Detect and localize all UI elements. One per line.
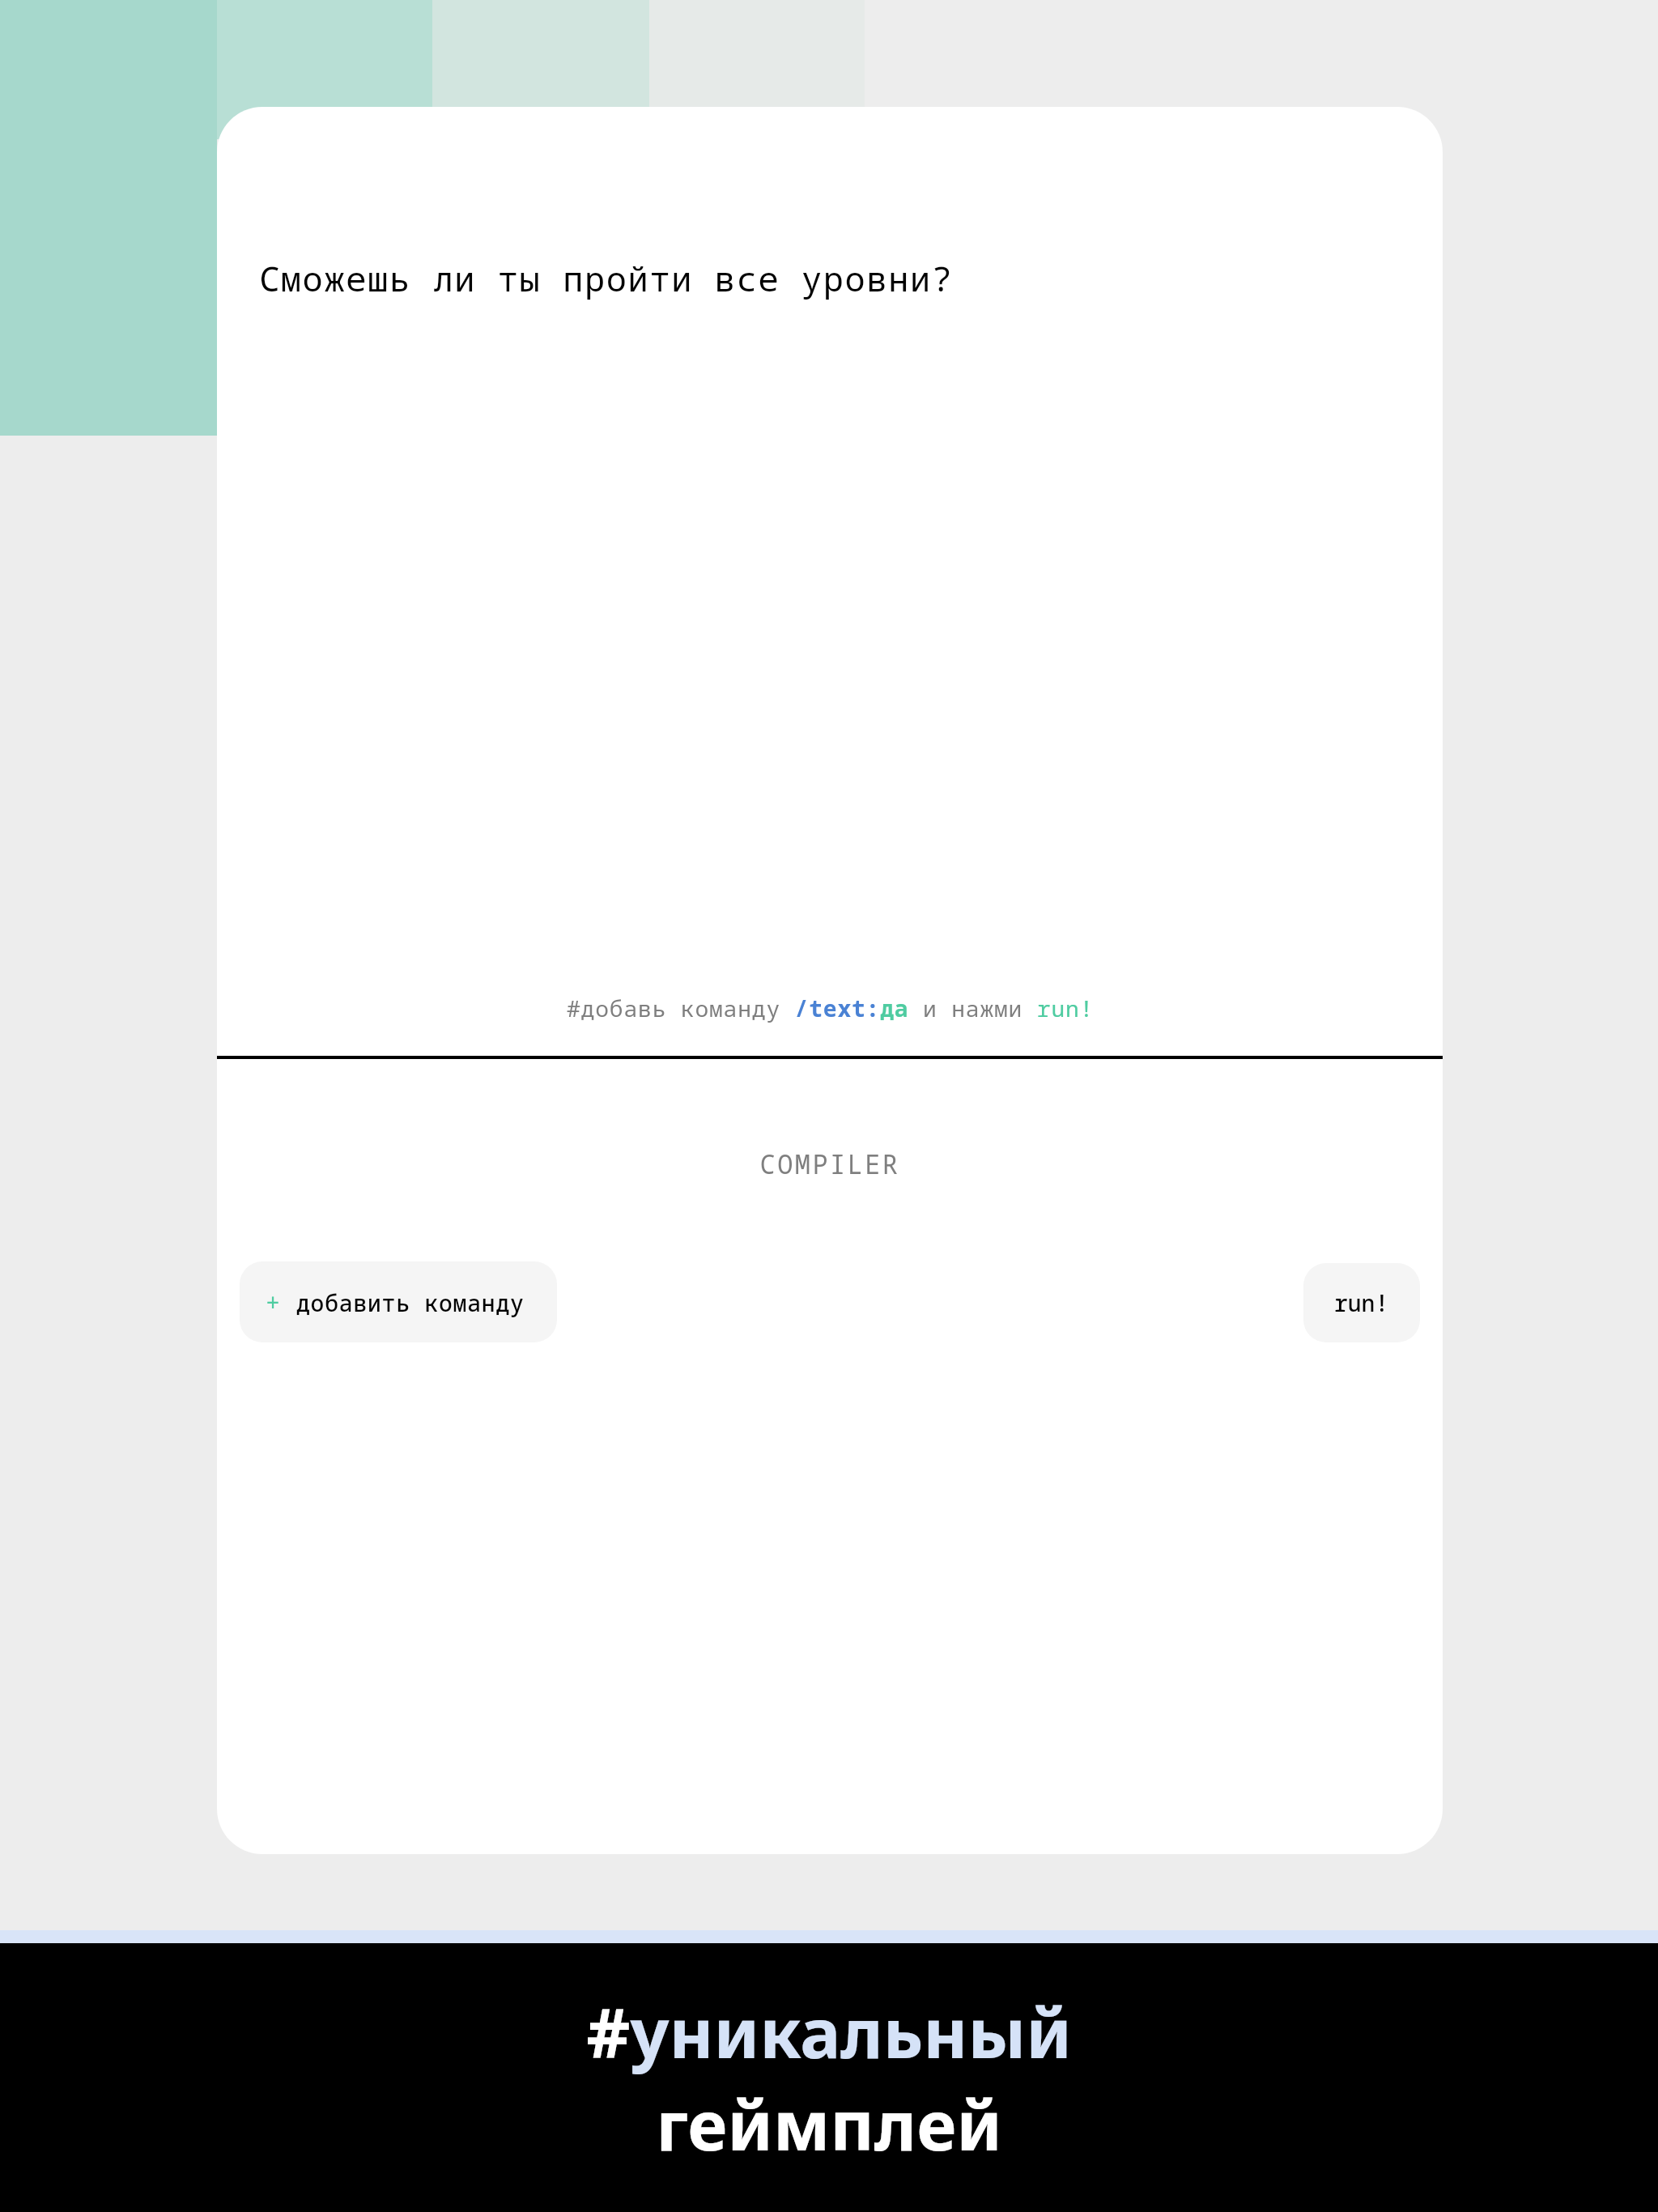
staticText: геймплей [656, 2078, 1002, 2170]
button[interactable]: run! [1303, 1263, 1420, 1342]
staticText: #добавь команду /text:да и нажми run! [567, 993, 1095, 1023]
staticText: Сможешь ли ты пройти все уровни? [259, 256, 954, 303]
button[interactable]: + [240, 1261, 557, 1342]
staticText: #уникальный [586, 1985, 1072, 2078]
staticText: + [266, 1286, 282, 1318]
staticText: добавить команду [296, 1287, 525, 1318]
staticText: COMPILER [759, 1146, 900, 1182]
staticText: run! [1334, 1287, 1389, 1318]
